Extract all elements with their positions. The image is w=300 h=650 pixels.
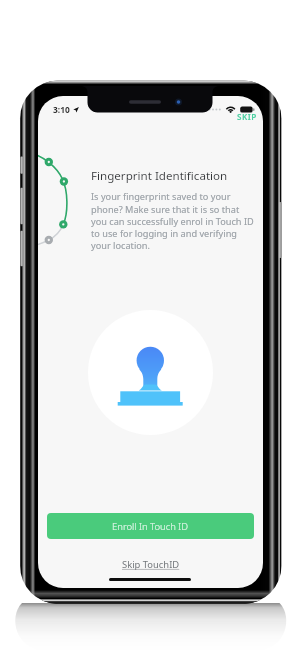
button[interactable]: SKIP — [235, 110, 259, 123]
staticText: Skip TouchID — [122, 558, 180, 571]
staticText: Fingerprint Identification — [91, 168, 228, 184]
staticText: Is your fingerprint saved to your phone?… — [91, 190, 256, 251]
staticText: SKIP — [237, 111, 257, 122]
button[interactable]: Enroll In Touch ID — [47, 513, 254, 539]
button[interactable]: Skip TouchID — [116, 556, 186, 573]
staticText: 3:10 — [53, 104, 70, 115]
staticText: Enroll In Touch ID — [112, 520, 189, 533]
